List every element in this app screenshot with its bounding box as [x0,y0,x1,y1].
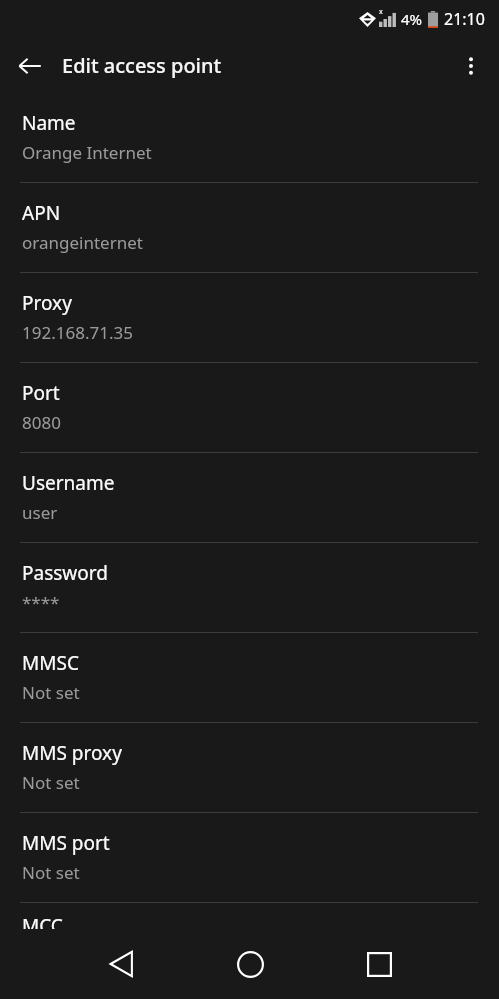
staticText: Name [22,110,76,136]
staticText: Port [22,380,60,406]
staticText: Username [22,470,115,496]
button[interactable]: MMSC [0,633,499,722]
button[interactable]: More options [451,46,491,86]
button[interactable]: Back [10,46,50,86]
staticText: **** [22,591,60,614]
button[interactable]: MMS port [0,813,499,902]
staticText: Proxy [22,290,72,316]
staticText: x [379,7,383,17]
staticText: 21:10 [444,8,485,30]
staticText: Orange Internet [22,141,152,164]
button[interactable]: Recent apps [354,939,404,989]
button[interactable]: MMS proxy [0,723,499,812]
button[interactable]: Username [0,453,499,542]
staticText: user [22,501,58,524]
button[interactable]: Proxy [0,273,499,362]
staticText: 192.168.71.35 [22,321,133,344]
staticText: MMSC [22,650,79,676]
staticText: Edit access point [62,52,222,79]
staticText: 8080 [22,411,61,434]
staticText: Not set [22,861,80,884]
button[interactable]: Home [225,939,275,989]
button[interactable]: Port [0,363,499,452]
staticText: MMS proxy [22,740,122,766]
button[interactable]: APN [0,183,499,272]
staticText: Not set [22,771,80,794]
staticText: Password [22,560,108,586]
button[interactable]: Password [0,543,499,632]
button[interactable]: Back [97,939,147,989]
staticText: APN [22,200,61,226]
staticText: Not set [22,681,80,704]
staticText: 4% [401,9,423,29]
staticText: MMS port [22,830,110,856]
staticText: MCC [22,913,63,939]
staticText: orangeinternet [22,231,143,254]
button[interactable]: Name [0,93,499,182]
